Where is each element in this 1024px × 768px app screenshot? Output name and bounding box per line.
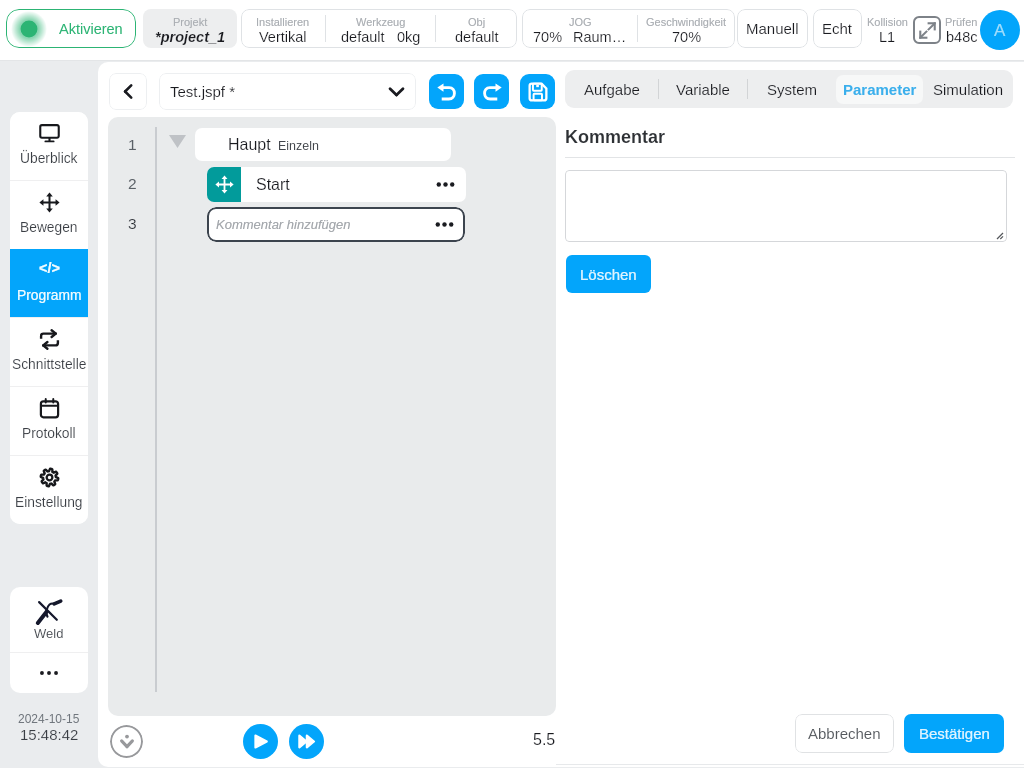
button[interactable]: Echt <box>813 9 862 48</box>
staticText: Weld <box>34 626 64 641</box>
staticText: 0kg <box>397 29 421 45</box>
button[interactable]: Vollbild <box>913 16 941 44</box>
staticText: Haupt <box>228 136 271 154</box>
staticText: Manuell <box>746 20 799 37</box>
staticText: Programm <box>17 288 82 303</box>
staticText: Abbrechen <box>808 725 881 742</box>
staticText: 15:48:42 <box>20 726 79 743</box>
button[interactable]: Schnittstelle <box>10 318 88 386</box>
staticText: Kollision <box>867 16 908 28</box>
staticText: 70% <box>672 29 702 45</box>
button[interactable]: Kommentar hinzufügen <box>207 207 465 242</box>
button[interactable]: Test.jspf * <box>159 73 416 110</box>
button[interactable]: Überblick <box>10 112 88 180</box>
button[interactable]: Abbrechen <box>795 714 894 753</box>
staticText: Aufgabe <box>584 81 640 98</box>
staticText: Werkzeug <box>356 16 406 28</box>
staticText: Start <box>256 176 290 194</box>
button[interactable]: Bestätigen <box>904 714 1004 753</box>
button[interactable]: Weld <box>10 587 88 652</box>
staticText: Echt <box>822 20 853 37</box>
staticText: Bestätigen <box>919 725 990 742</box>
button[interactable]: Speichern <box>520 74 555 109</box>
button[interactable]: Parameter <box>836 75 923 104</box>
staticText: A <box>994 21 1006 40</box>
staticText: </> <box>39 260 60 276</box>
button[interactable]: Aktivieren <box>6 9 136 48</box>
staticText: Überblick <box>20 151 78 166</box>
staticText: Variable <box>676 81 730 98</box>
button[interactable]: Zurück <box>109 73 147 110</box>
staticText: L1 <box>879 29 896 45</box>
staticText: Geschwindigkeit <box>646 16 727 28</box>
staticText: 5.5 <box>533 731 556 749</box>
staticText: Aktivieren <box>59 21 123 37</box>
button[interactable]: </> <box>10 249 88 317</box>
staticText: Kommentar <box>565 127 666 147</box>
staticText: Bewegen <box>20 220 78 235</box>
staticText: 1 <box>128 136 137 153</box>
staticText: 2024-10-15 <box>18 712 80 725</box>
staticText: System <box>767 81 818 98</box>
button[interactable]: Projekt <box>143 9 237 48</box>
button[interactable]: Mehr <box>10 653 88 693</box>
button[interactable]: Kollision <box>864 9 910 48</box>
staticText: Raum… <box>573 29 627 45</box>
button[interactable]: Manuell <box>737 9 808 48</box>
button[interactable]: Installieren <box>241 9 517 48</box>
staticText: Löschen <box>580 266 637 283</box>
button[interactable]: Haupt <box>195 128 451 161</box>
button[interactable]: System <box>748 70 836 108</box>
button[interactable]: Start <box>207 167 466 202</box>
staticText: 2 <box>128 175 137 192</box>
staticText: Vertikal <box>259 29 307 45</box>
staticText: Einzeln <box>278 139 319 153</box>
button[interactable]: Variable <box>659 70 747 108</box>
staticText: 70% <box>533 29 563 45</box>
button[interactable]: Abspielen <box>243 724 278 759</box>
button[interactable]: Rückgängig <box>429 74 464 109</box>
button[interactable]: Löschen <box>566 255 651 293</box>
staticText: Installieren <box>256 16 310 28</box>
staticText: Obj <box>468 16 486 28</box>
button[interactable] <box>565 170 1007 242</box>
button[interactable]: Wiederholen <box>474 74 509 109</box>
staticText: 3 <box>128 215 137 232</box>
staticText: default <box>341 29 385 45</box>
button[interactable]: Bewegen <box>10 181 88 249</box>
button[interactable]: Aufgabe <box>565 70 658 108</box>
staticText: Test.jspf * <box>170 83 236 100</box>
staticText: Parameter <box>843 81 917 98</box>
button[interactable]: Einstellung <box>10 456 88 524</box>
staticText: Einstellung <box>15 495 83 510</box>
staticText: *project_1 <box>155 29 226 45</box>
staticText: default <box>455 29 499 45</box>
staticText: JOG <box>569 16 592 28</box>
button[interactable]: Protokoll <box>10 387 88 455</box>
button[interactable]: Simulation <box>923 70 1013 108</box>
staticText: Schnittstelle <box>12 357 87 372</box>
staticText: Protokoll <box>22 426 76 441</box>
button[interactable]: JOG <box>522 9 735 48</box>
button[interactable]: Schnellvorlauf <box>289 724 324 759</box>
staticText: Projekt <box>173 16 208 28</box>
staticText: Prüfen <box>945 16 978 28</box>
staticText: Kommentar hinzufügen <box>216 217 351 232</box>
button[interactable]: Prüfen <box>941 9 981 48</box>
staticText: Simulation <box>933 81 1004 98</box>
button[interactable]: Konto <box>980 10 1020 50</box>
staticText: b48c <box>946 29 978 45</box>
button[interactable]: Einklappen <box>110 725 143 758</box>
